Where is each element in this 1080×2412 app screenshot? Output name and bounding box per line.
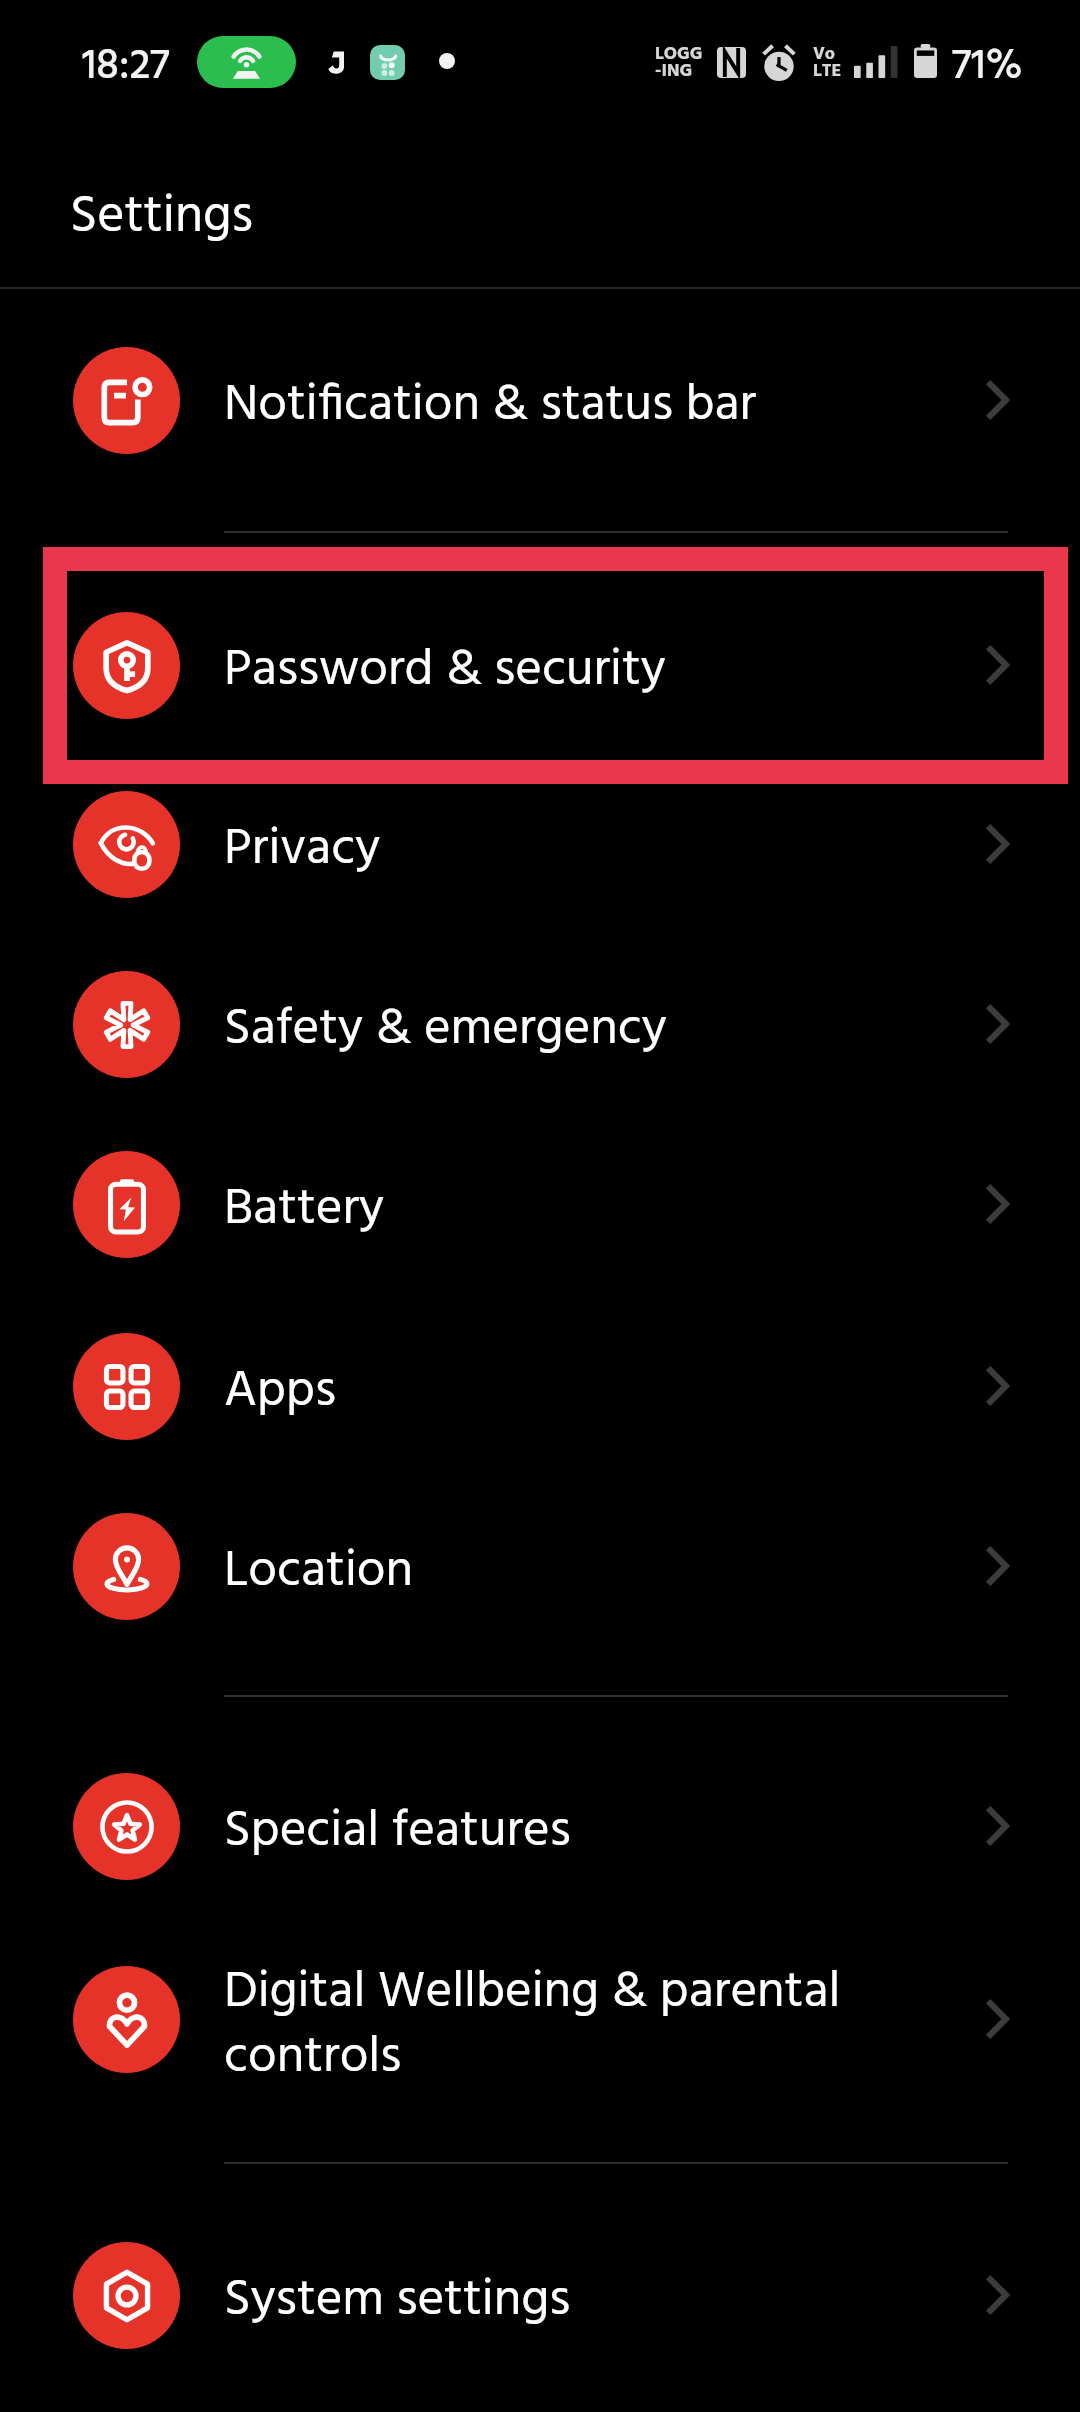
button[interactable]: Apps (0, 1296, 1080, 1476)
button[interactable]: Safety & emergency (0, 934, 1080, 1114)
staticText: Apps (224, 1351, 924, 1433)
staticText: Notification & status bar (224, 365, 924, 447)
button[interactable]: Digital Wellbeing & parental controls (0, 1919, 1080, 2119)
staticText: Privacy (224, 809, 924, 891)
button[interactable]: Notification & status bar (0, 310, 1080, 490)
staticText: LOGG -ING (655, 40, 703, 86)
button[interactable]: Password & security (0, 575, 1080, 755)
staticText: Settings (70, 176, 253, 259)
staticText: Battery (224, 1169, 924, 1251)
staticText: 18:27 (82, 34, 170, 101)
staticText: Safety & emergency (224, 989, 924, 1071)
button[interactable]: Privacy (0, 754, 1080, 934)
staticText: System settings (224, 2260, 924, 2342)
staticText: Special features (224, 1791, 924, 1873)
button[interactable]: Special features (0, 1736, 1080, 1916)
staticText: Vo LTE (813, 40, 842, 86)
button[interactable]: System settings (0, 2205, 1080, 2385)
staticText: 71% (952, 34, 1023, 101)
staticText: Location (224, 1531, 924, 1613)
button[interactable]: Location (0, 1476, 1080, 1656)
button[interactable]: Battery (0, 1114, 1080, 1294)
staticText: Password & security (224, 630, 924, 712)
staticText: Digital Wellbeing & parental controls (224, 1952, 924, 2099)
